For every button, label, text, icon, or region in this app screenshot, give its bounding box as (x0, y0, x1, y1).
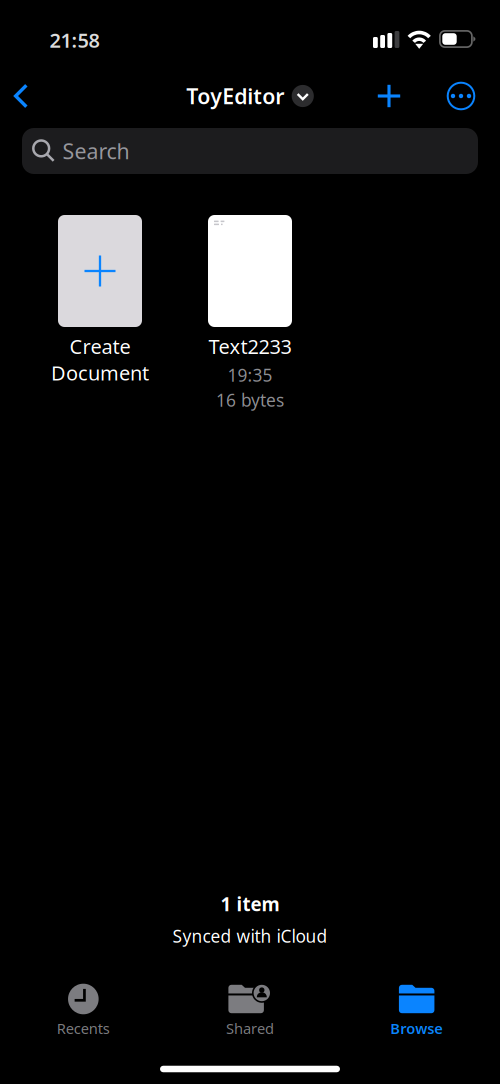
staticText: 16 bytes (216, 389, 284, 412)
staticText: 19:35 (227, 364, 272, 387)
staticText: Document (51, 360, 149, 386)
button[interactable]: Text2233 (175, 215, 325, 425)
button[interactable]: Shared (167, 984, 333, 1042)
staticText: 1 item (220, 892, 279, 916)
button[interactable]: More (439, 74, 483, 118)
button[interactable]: Back (0, 74, 43, 118)
staticText: Browse (390, 1018, 443, 1038)
button[interactable]: New document (367, 74, 411, 118)
staticText: Create (69, 333, 130, 360)
staticText: ToyEditor (186, 82, 284, 110)
button[interactable]: Search (22, 128, 478, 174)
staticText: Synced with iCloud (172, 924, 327, 947)
staticText: 21:58 (49, 27, 99, 53)
button[interactable]: Recents (0, 984, 167, 1042)
button[interactable]: Browse (333, 984, 500, 1042)
button[interactable]: ToyEditor (186, 74, 314, 118)
staticText: Recents (57, 1018, 110, 1038)
staticText: Search (62, 137, 129, 165)
button[interactable]: Create (25, 215, 175, 425)
staticText: Shared (226, 1018, 274, 1038)
staticText: Text2233 (208, 333, 291, 360)
